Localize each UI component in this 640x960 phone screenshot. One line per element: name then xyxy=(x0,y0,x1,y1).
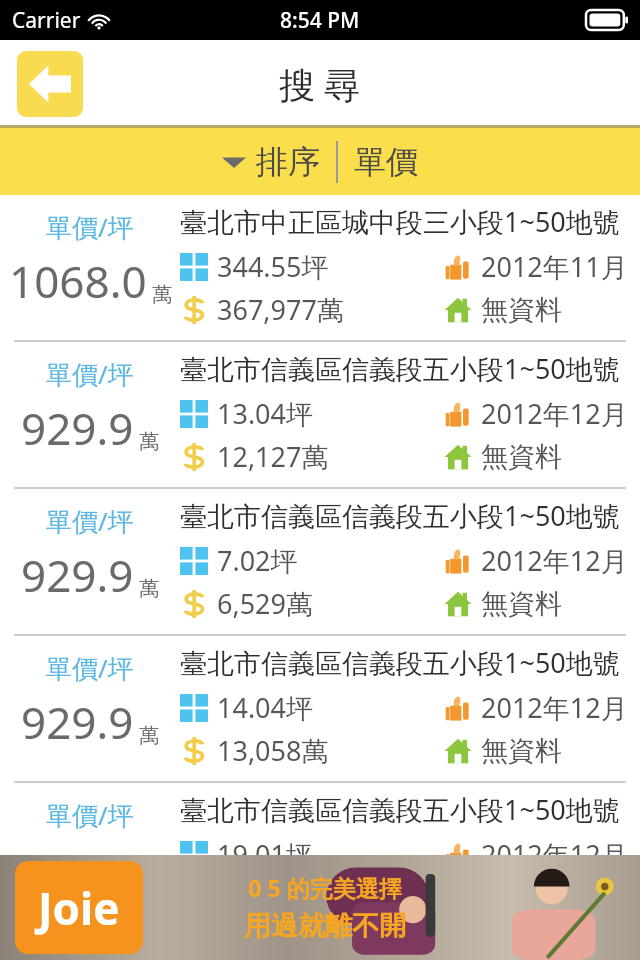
button[interactable]: 排序 xyxy=(0,128,640,195)
staticText: 萬 xyxy=(152,282,172,307)
staticText: 1068.0 xyxy=(9,251,147,311)
staticText: 929.9 xyxy=(21,839,134,899)
staticText: 929.9 xyxy=(21,398,134,458)
staticText: 2012年12月 xyxy=(481,542,628,579)
staticText: 排序 xyxy=(256,142,320,182)
staticText: 用過就離不開 xyxy=(244,909,406,943)
staticText: 19.01坪 xyxy=(217,836,314,873)
staticText: 14.04坪 xyxy=(217,689,314,726)
button[interactable]: Joie advertisement xyxy=(15,861,143,954)
staticText: 367,977萬 xyxy=(217,291,344,328)
staticText: 萬 xyxy=(139,576,159,601)
staticText: 臺北市中正區城中段三小段1~50地號 xyxy=(180,203,620,240)
staticText: 臺北市信義區信義段五小段1~50地號 xyxy=(180,350,620,387)
staticText: 萬 xyxy=(139,723,159,748)
staticText: 0 5 的完美選擇 xyxy=(248,872,402,903)
staticText: 單價 xyxy=(354,142,418,182)
button[interactable]: Back xyxy=(17,51,83,117)
button[interactable]: 單價/坪 xyxy=(0,195,640,340)
staticText: 單價/坪 xyxy=(46,356,134,392)
staticText: 929.9 xyxy=(21,545,134,605)
staticText: 6,529萬 xyxy=(217,585,314,622)
staticText: 單價/坪 xyxy=(46,209,134,245)
staticText: 萬 xyxy=(139,429,159,454)
staticText: 臺北市信義區信義段五小段1~50地號 xyxy=(180,644,620,681)
staticText: 17,678萬 xyxy=(217,879,329,916)
staticText: 無資料 xyxy=(481,440,562,474)
staticText: 單價/坪 xyxy=(46,797,134,833)
staticText: 2012年11月 xyxy=(481,248,628,285)
staticText: 無資料 xyxy=(481,293,562,327)
staticText: 929.9 xyxy=(21,692,134,752)
button[interactable]: 單價/坪 xyxy=(0,783,640,928)
button[interactable]: 單價/坪 xyxy=(0,342,640,487)
staticText: 12,127萬 xyxy=(217,438,329,475)
staticText: 臺北市信義區信義段五小段1~50地號 xyxy=(180,791,620,828)
staticText: 13.04坪 xyxy=(217,395,314,432)
button[interactable]: 單價/坪 xyxy=(0,489,640,634)
staticText: 344.55坪 xyxy=(217,248,329,285)
staticText: 2012年12月 xyxy=(481,689,628,726)
staticText: 7.02坪 xyxy=(217,542,298,579)
staticText: Joie xyxy=(38,878,120,938)
staticText: 13,058萬 xyxy=(217,732,329,769)
staticText: 無資料 xyxy=(481,587,562,621)
staticText: 8:54 PM xyxy=(280,6,360,35)
staticText: Carrier xyxy=(12,6,81,35)
staticText: 萬 xyxy=(139,870,159,895)
staticText: 無資料 xyxy=(481,881,562,915)
staticText: 無資料 xyxy=(481,734,562,768)
staticText: 單價/坪 xyxy=(46,650,134,686)
button[interactable]: 單價/坪 xyxy=(0,636,640,781)
staticText: 搜 尋 xyxy=(279,60,361,109)
staticText: 臺北市信義區信義段五小段1~50地號 xyxy=(180,497,620,534)
staticText: 2012年12月 xyxy=(481,395,628,432)
staticText: 單價/坪 xyxy=(46,503,134,539)
staticText: 2012年12月 xyxy=(481,836,628,873)
